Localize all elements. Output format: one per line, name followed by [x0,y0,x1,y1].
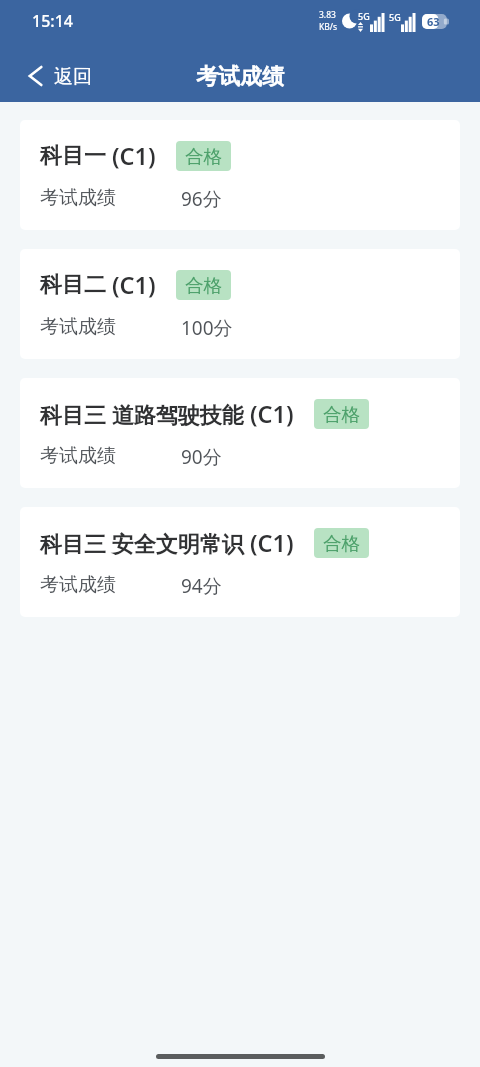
staticText: 100分 [181,315,233,341]
button[interactable]: Back [0,51,108,97]
staticText: 94分 [181,573,222,599]
staticText: 科目三 道路驾驶技能 [40,399,244,429]
staticText: 15:14 [32,10,73,32]
staticText: (C1) [250,527,294,559]
button[interactable]: 科目三 安全文明常识 [20,507,460,617]
staticText: 返回 [54,65,92,89]
staticText: 90分 [181,444,222,470]
staticText: 科目三 安全文明常识 [40,528,244,558]
staticText: 96分 [181,186,222,212]
staticText: 5G [358,10,370,22]
staticText: (C1) [250,398,294,430]
staticText: 考试成绩 [40,573,116,597]
staticText: 考试成绩 [40,444,116,468]
staticText: (C1) [112,140,156,172]
staticText: 科目二 [40,271,106,299]
button[interactable]: 科目二 [20,249,460,359]
staticText: 科目一 [40,142,106,170]
button[interactable]: 科目三 道路驾驶技能 [20,378,460,488]
staticText: 考试成绩 [196,63,284,91]
staticText: 考试成绩 [40,315,116,339]
staticText: 3.83 [319,9,336,21]
staticText: 合格 [323,403,360,426]
staticText: KB/s [319,21,338,33]
staticText: 合格 [323,532,360,555]
staticText: (C1) [112,269,156,301]
staticText: 考试成绩 [40,186,116,210]
staticText: 63 [427,14,440,29]
button[interactable]: 科目一 [20,120,460,230]
other: Back [29,67,42,85]
staticText: 5G [389,11,401,23]
staticText: 合格 [185,145,222,168]
staticText: 合格 [185,274,222,297]
